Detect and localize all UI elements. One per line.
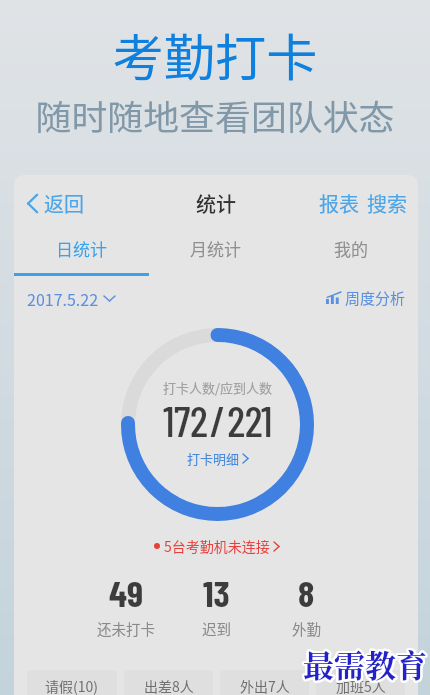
button[interactable]: 5台考勤机未连接 — [14, 533, 418, 559]
button[interactable]: 2017.5.22 — [14, 283, 123, 313]
staticText: 随时随地查看团队状态 — [0, 90, 430, 140]
button[interactable]: 月统计 — [148, 227, 283, 252]
button[interactable]: 加班5人 — [316, 670, 405, 695]
staticText: 打卡明细 — [187, 449, 240, 468]
button[interactable]: 日统计 — [14, 227, 148, 252]
staticText: 统计 — [196, 189, 236, 218]
staticText: 请假(10) — [45, 676, 99, 695]
staticText: 最需教育 — [304, 642, 428, 687]
staticText: 172 / 221 — [163, 394, 273, 446]
button[interactable]: 49 — [81, 570, 171, 639]
staticText: 2017.5.22 — [27, 287, 99, 309]
staticText: 最需教育 — [303, 641, 427, 686]
button[interactable]: 周度分析 — [326, 283, 418, 313]
staticText: 日统计 — [56, 236, 107, 261]
button[interactable]: 8 — [261, 570, 351, 639]
staticText: 13 — [203, 570, 230, 614]
staticText: 月统计 — [190, 236, 241, 261]
button[interactable]: 搜索 — [363, 183, 411, 224]
staticText: 最需教育 — [303, 642, 427, 687]
button[interactable]: 出差8人 — [124, 670, 213, 695]
staticText: 返回 — [44, 189, 84, 218]
staticText: 考勤打卡 — [0, 19, 430, 91]
staticText: 49 — [109, 570, 144, 614]
staticText: 打卡人数/应到人数 — [163, 378, 273, 397]
staticText: 最需教育 — [301, 640, 425, 685]
staticText: 最需教育 — [305, 642, 429, 687]
staticText: 迟到 — [202, 618, 231, 639]
staticText: 最需教育 — [304, 639, 428, 684]
staticText: 最需教育 — [302, 643, 426, 688]
staticText: 最需教育 — [302, 639, 426, 684]
staticText: 最需教育 — [303, 640, 427, 685]
button[interactable]: 13 — [171, 570, 261, 639]
staticText: 最需教育 — [303, 643, 427, 688]
staticText: 最需教育 — [305, 641, 429, 686]
staticText: 最需教育 — [303, 639, 427, 684]
staticText: 最需教育 — [301, 642, 425, 687]
button[interactable]: 我的 — [283, 227, 418, 252]
staticText: 最需教育 — [304, 641, 428, 686]
staticText: 5台考勤机未连接 — [164, 536, 270, 556]
staticText: 8 — [298, 570, 315, 614]
button[interactable]: 请假(10) — [27, 670, 117, 695]
staticText: 最需教育 — [305, 640, 429, 685]
staticText: 最需教育 — [304, 640, 428, 685]
staticText: 最需教育 — [302, 642, 426, 687]
staticText: 还未打卡 — [97, 618, 155, 639]
button[interactable]: 外出7人 — [220, 670, 309, 695]
staticText: 最需教育 — [301, 641, 425, 686]
staticText: 出差8人 — [144, 676, 194, 695]
button[interactable]: 返回 — [14, 183, 94, 224]
staticText: 最需教育 — [302, 640, 426, 685]
staticText: 最需教育 — [304, 643, 428, 688]
button[interactable]: 报表 — [315, 183, 363, 224]
button[interactable]: 打卡明细 — [183, 447, 252, 470]
staticText: 加班5人 — [336, 676, 386, 695]
staticText: 周度分析 — [345, 287, 406, 309]
staticText: 外勤 — [292, 618, 321, 639]
staticText: 最需教育 — [302, 641, 426, 686]
staticText: 外出7人 — [240, 676, 290, 695]
staticText: 我的 — [334, 236, 368, 261]
